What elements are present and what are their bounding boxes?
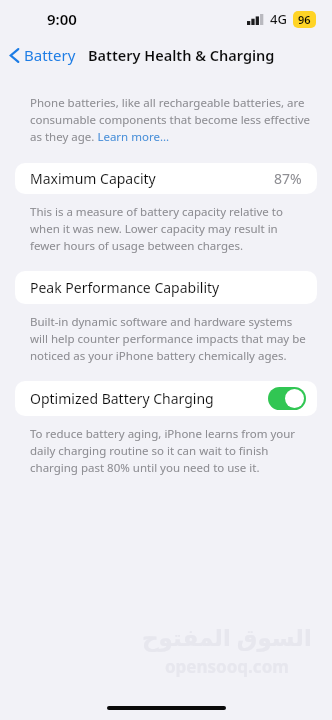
button[interactable]: Optimized Battery Charging, on <box>268 387 306 410</box>
button[interactable]: Battery <box>0 40 84 70</box>
staticText: To reduce battery aging, iPhone learns f… <box>30 426 308 476</box>
staticText: 9:00 <box>47 9 77 29</box>
staticText: Built-in dynamic software and hardware s… <box>30 314 308 364</box>
staticText: Battery <box>24 45 76 65</box>
staticText: Peak Performance Capability <box>30 278 220 297</box>
staticText: Battery Health & Charging <box>88 45 275 65</box>
staticText: 96 <box>298 12 311 27</box>
button[interactable]: Optimized Battery Charging <box>15 381 317 416</box>
staticText: opensooq.com <box>165 655 289 678</box>
staticText: 87% <box>274 169 302 188</box>
staticText: Maximum Capacity <box>30 169 156 188</box>
button[interactable]: Maximum Capacity <box>15 163 317 194</box>
button[interactable]: Phone batteries, like all rechargeable b… <box>30 95 310 145</box>
staticText: This is a measure of battery capacity re… <box>30 204 308 254</box>
button[interactable]: Peak Performance Capability <box>15 271 317 304</box>
staticText: Optimized Battery Charging <box>30 389 214 408</box>
staticText: 4G <box>270 10 287 28</box>
staticText: السوق المفتوح <box>142 621 312 652</box>
